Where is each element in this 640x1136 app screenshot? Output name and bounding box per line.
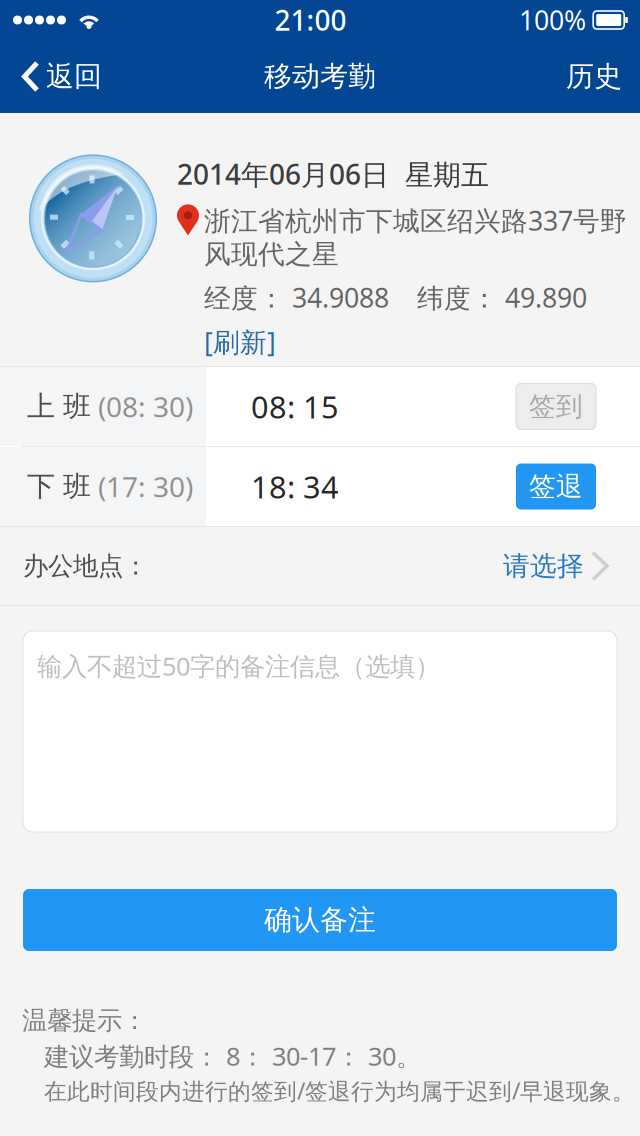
staticText: 浙江省杭州市下城区绍兴路337号野风现代之星 (204, 203, 627, 271)
staticText: 办公地点： (23, 550, 148, 581)
staticText: (17: 30) (91, 468, 193, 505)
staticText: 18: 34 (251, 466, 339, 507)
staticText: 08: 15 (251, 386, 339, 427)
staticText: 签退 (529, 470, 583, 503)
staticText: [刷新] (204, 324, 276, 360)
button[interactable]: [刷新] (177, 315, 286, 362)
button[interactable]: 办公地点： (0, 527, 640, 605)
staticText: 返回 (46, 59, 102, 94)
staticText: 历史 (566, 59, 622, 94)
staticText: (08: 30) (91, 388, 193, 425)
button[interactable]: 返回 (0, 40, 116, 113)
button[interactable]: 签退 (516, 463, 596, 509)
staticText: 经度： 34.9088 纬度： 49.890 (204, 280, 587, 315)
staticText: 确认备注 (264, 903, 376, 937)
staticText: 21:00 (274, 1, 346, 39)
staticText: 签到 (529, 390, 583, 423)
staticText: 上 班 (27, 389, 91, 424)
staticText: 输入不超过50字的备注信息（选填） (37, 649, 440, 683)
staticText: 下 班 (27, 469, 91, 504)
staticText: 100% (519, 2, 586, 38)
staticText: 温馨提示： (22, 1005, 147, 1036)
staticText: 在此时间段内进行的签到/签退行为均属于迟到/早退现象。 (44, 1076, 635, 1106)
staticText: 建议考勤时段： 8： 30-17： 30。 (44, 1039, 421, 1073)
staticText: 2014年06月06日 星期五 (177, 155, 489, 193)
button[interactable]: 确认备注 (23, 889, 617, 951)
staticText: 请选择 (503, 550, 584, 582)
button[interactable]: 签到 (516, 383, 596, 429)
button[interactable]: 历史 (548, 40, 640, 113)
staticText: 移动考勤 (264, 59, 376, 94)
